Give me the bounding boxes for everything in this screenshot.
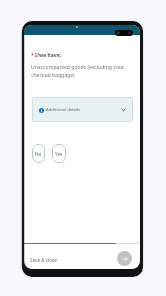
staticText: Unaccompanied goods (excluding your chec… [31, 64, 125, 79]
staticText: Additional details [46, 107, 81, 113]
button[interactable]: No [32, 144, 45, 163]
button[interactable]: Additional details [32, 97, 133, 122]
button[interactable]: Next [117, 251, 132, 266]
staticText: Save & close [30, 257, 57, 263]
staticText: I/we have: [35, 52, 62, 59]
staticText: Yes [55, 151, 63, 157]
staticText: No [35, 151, 42, 157]
staticText: * [31, 52, 34, 59]
button[interactable]: Save & close [27, 253, 60, 267]
button[interactable]: Yes [52, 144, 66, 163]
